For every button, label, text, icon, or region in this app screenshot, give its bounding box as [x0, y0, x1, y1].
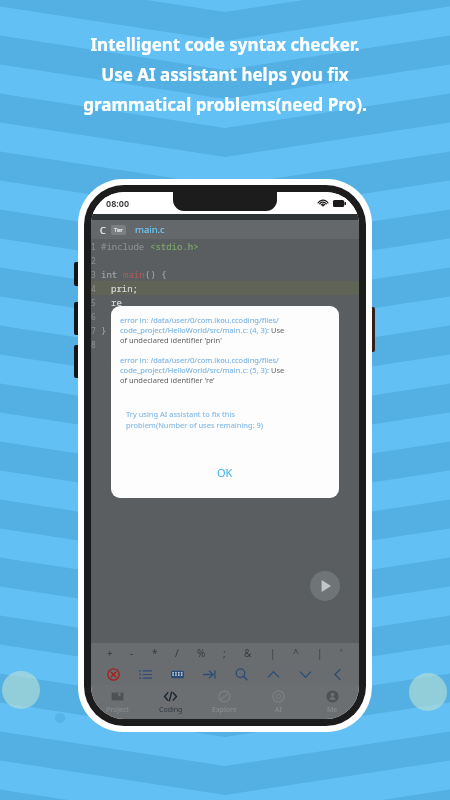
staticText: code_project/HelloWorld/src/main.c: (4, … — [120, 325, 271, 335]
staticText: 1 — [91, 241, 101, 252]
staticText: error in: /data/user/0/com.ikou.ccoding/… — [120, 355, 279, 365]
button[interactable]: % — [195, 645, 208, 661]
button[interactable]: * — [150, 645, 160, 661]
button[interactable]: Search — [231, 664, 251, 684]
button[interactable]: Me — [305, 685, 359, 719]
button[interactable]: Back — [327, 664, 347, 684]
staticText: grammatical problems(need Pro). — [83, 93, 367, 116]
staticText: () { — [145, 268, 167, 280]
button[interactable]: List — [135, 664, 155, 684]
staticText: 4 — [91, 283, 101, 294]
staticText: | — [317, 646, 323, 660]
staticText: ^ — [293, 646, 299, 660]
staticText: main — [123, 268, 145, 280]
button[interactable]: Previous — [263, 664, 283, 684]
button[interactable]: ; — [221, 645, 228, 661]
staticText: ; — [223, 646, 226, 660]
staticText: Coding — [159, 705, 183, 715]
staticText: <stdio.h> — [150, 240, 199, 252]
staticText: } — [101, 324, 107, 336]
staticText: + — [107, 646, 113, 660]
staticText: - — [130, 646, 134, 660]
staticText: Use AI assistant helps you fix — [101, 63, 349, 86]
staticText: | — [270, 646, 276, 660]
button[interactable]: Clear — [103, 664, 123, 684]
button[interactable]: / — [173, 645, 181, 661]
staticText: 3 — [91, 269, 101, 280]
button[interactable]: Next — [295, 664, 315, 684]
staticText: int — [101, 268, 123, 280]
staticText: 6 — [91, 311, 101, 322]
button[interactable]: | — [268, 645, 278, 661]
staticText: #include — [101, 240, 150, 252]
staticText: main.c — [135, 223, 165, 236]
staticText: 5 — [91, 297, 101, 308]
button[interactable]: Run — [310, 571, 340, 601]
staticText: code_project/HelloWorld/src/main.c: (5, … — [120, 365, 271, 375]
button[interactable]: ' — [338, 645, 345, 661]
button[interactable]: Explore — [197, 685, 251, 719]
button[interactable]: Coding — [144, 685, 197, 719]
staticText: AI — [275, 705, 282, 715]
staticText: 8 — [91, 339, 101, 350]
button[interactable]: Keyboard — [167, 664, 187, 684]
staticText: error in: /data/user/0/com.ikou.ccoding/… — [120, 315, 279, 325]
staticText: 7 — [91, 325, 101, 336]
staticText: Explore — [212, 705, 237, 715]
button[interactable]: Tab — [199, 664, 219, 684]
staticText: prin; — [111, 282, 139, 294]
button[interactable]: Project — [91, 685, 144, 719]
staticText: Use — [271, 325, 285, 335]
staticText: of undeclared identifier 'prin' — [120, 335, 222, 345]
staticText: Intelligent code syntax checker. — [90, 33, 360, 56]
button[interactable]: ^ — [291, 645, 301, 661]
staticText: Use — [271, 365, 285, 375]
staticText: OK — [217, 465, 233, 480]
staticText: C — [100, 224, 106, 236]
button[interactable]: + — [105, 645, 115, 661]
staticText: * — [152, 646, 158, 660]
staticText: & — [244, 646, 252, 660]
button[interactable]: - — [128, 645, 136, 661]
button[interactable]: | — [315, 645, 325, 661]
staticText: % — [197, 646, 206, 660]
staticText: Me — [327, 705, 338, 715]
staticText: ' — [340, 646, 343, 660]
staticText: re — [111, 296, 122, 308]
staticText: / — [175, 646, 179, 660]
staticText: Ter — [114, 226, 123, 234]
staticText: 08:00 — [106, 197, 130, 209]
staticText: Try using AI assistant to fix this probl… — [126, 409, 264, 430]
staticText: 2 — [91, 255, 101, 266]
staticText: Project — [106, 705, 129, 715]
button[interactable]: OK — [120, 465, 330, 480]
staticText: of undeclared identifier 're' — [120, 375, 215, 385]
button[interactable]: & — [242, 645, 254, 661]
button[interactable]: AI — [251, 685, 305, 719]
